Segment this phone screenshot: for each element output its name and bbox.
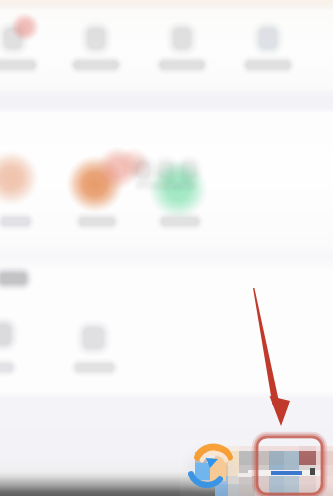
button[interactable]: [0, 270, 333, 392]
button[interactable]: [0, 10, 333, 90]
button[interactable]: Highlighted download button: [0, 0, 333, 496]
button[interactable]: [0, 112, 333, 246]
other: Highlighted menu button: [0, 0, 333, 496]
